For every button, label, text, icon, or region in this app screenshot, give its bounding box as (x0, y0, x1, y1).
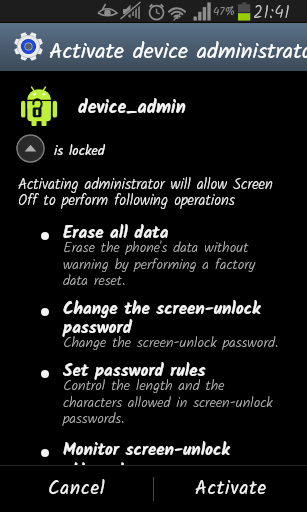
staticText: Change the screen-unlock password. (63, 332, 283, 355)
staticText: 47% (213, 3, 235, 21)
button[interactable]: Activate (154, 466, 307, 512)
staticText: Set password rules (63, 358, 275, 385)
staticText: Activate device administrator (49, 35, 307, 70)
staticText: Cancel (48, 474, 106, 504)
staticText: Activating administrator will allow Scre… (18, 173, 276, 213)
staticText: device_admin (78, 94, 186, 123)
staticText: is locked (54, 140, 105, 162)
staticText: Erase all data (63, 220, 275, 247)
button[interactable]: Cancel (0, 466, 153, 512)
staticText: 21:41 (253, 0, 291, 23)
staticText: Activate (195, 474, 267, 504)
staticText: Monitor screen-unlock attempts (63, 437, 275, 465)
staticText: Erase the phone's data without warning b… (63, 237, 283, 293)
button[interactable]: Collapse details (16, 134, 45, 163)
staticText: Change the screen-unlock password (63, 296, 275, 342)
button[interactable]: Activate device administrator (0, 23, 307, 71)
staticText: Control the length and the characters al… (63, 375, 283, 431)
